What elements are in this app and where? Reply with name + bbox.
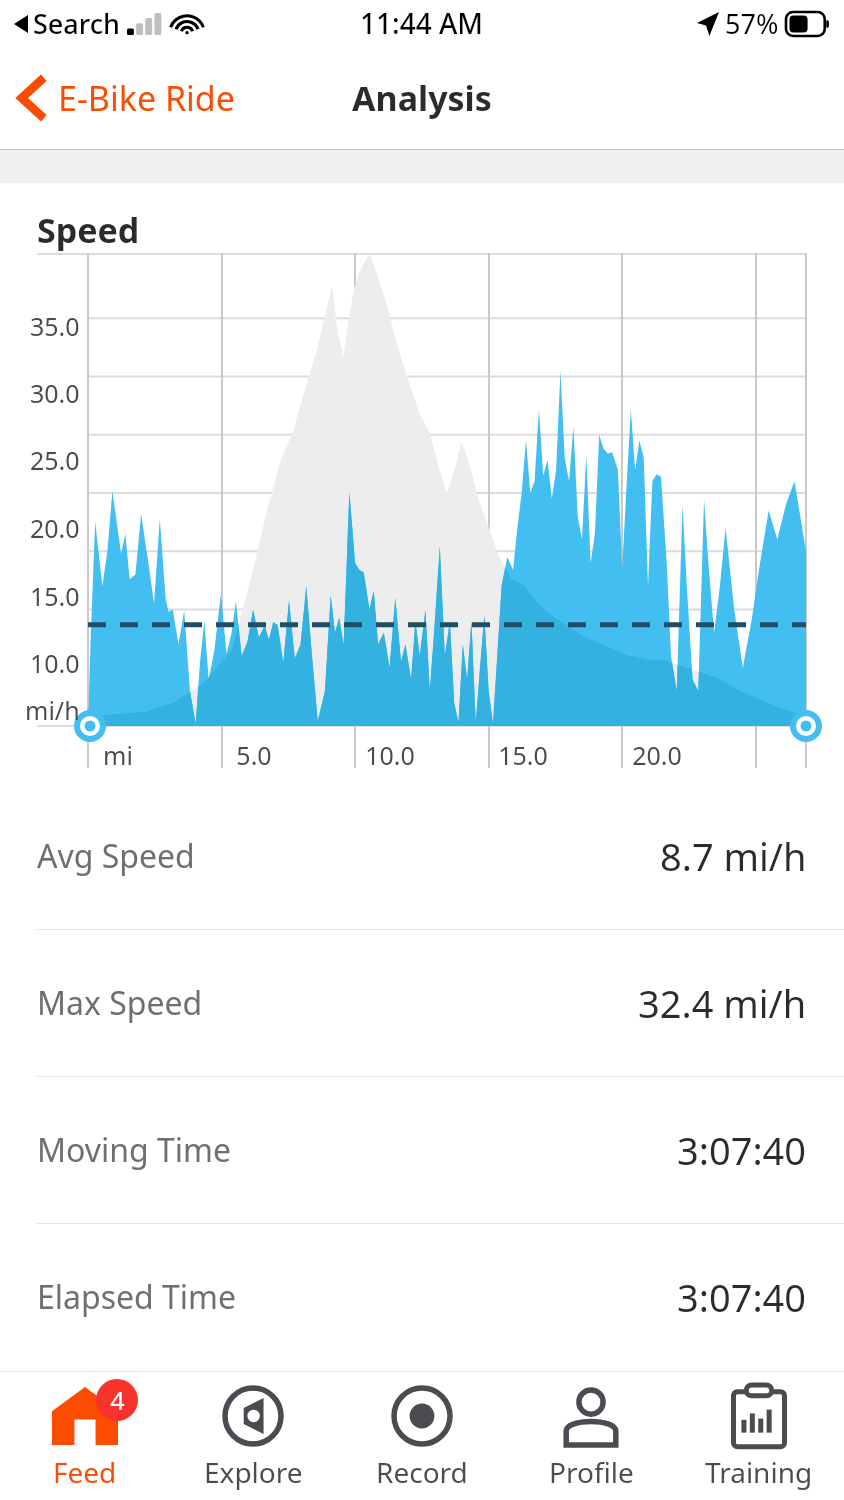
staticText: Speed (37, 207, 140, 253)
staticText: 5.0 (236, 738, 272, 772)
staticText: 25.0 (30, 443, 80, 477)
staticText: Feed (53, 1453, 117, 1491)
staticText: Training (705, 1453, 813, 1491)
staticText: 20.0 (30, 511, 80, 545)
button[interactable]: Moving Time (0, 1077, 844, 1223)
button[interactable]: Record (338, 1372, 506, 1500)
button[interactable]: Explore (169, 1372, 337, 1500)
staticText: Max Speed (37, 981, 203, 1025)
staticText: 20.0 (632, 738, 682, 772)
staticText: 3:07:40 (677, 1271, 807, 1323)
button[interactable]: Avg Speed (0, 783, 844, 929)
staticText: 4 (110, 1383, 125, 1417)
button[interactable]: Training (675, 1372, 843, 1500)
staticText: 57% (725, 5, 779, 42)
staticText: 30.0 (30, 376, 80, 410)
staticText: 10.0 (30, 646, 80, 680)
staticText: 15.0 (30, 579, 80, 613)
staticText: Record (376, 1453, 468, 1491)
other: Training (730, 1384, 788, 1448)
other: Feed (52, 1387, 118, 1445)
button[interactable]: E-Bike Ride (18, 75, 235, 121)
button[interactable]: Profile (507, 1372, 675, 1500)
staticText: mi/h (25, 693, 80, 727)
button[interactable]: Max Speed (0, 930, 844, 1076)
staticText: Elapsed Time (37, 1275, 237, 1319)
staticText: E-Bike Ride (58, 75, 235, 121)
button[interactable]: Feed (1, 1372, 169, 1500)
other: Profile (560, 1387, 622, 1445)
staticText: Profile (549, 1453, 634, 1491)
staticText: 15.0 (498, 738, 548, 772)
button[interactable]: Elapsed Time (0, 1224, 844, 1370)
staticText: Avg Speed (37, 834, 195, 878)
staticText: 35.0 (30, 309, 80, 343)
staticText: Moving Time (37, 1128, 232, 1172)
staticText: Analysis (352, 75, 492, 121)
staticText: 11:44 AM (360, 4, 484, 42)
staticText: 10.0 (365, 738, 415, 772)
other: Explore (222, 1385, 284, 1447)
staticText: mi (103, 738, 133, 772)
staticText: Explore (204, 1453, 303, 1491)
staticText: 8.7 mi/h (660, 830, 807, 882)
staticText: 3:07:40 (677, 1124, 807, 1176)
staticText: 32.4 mi/h (638, 977, 807, 1029)
staticText: Search (33, 5, 120, 42)
other: Record (391, 1385, 453, 1447)
